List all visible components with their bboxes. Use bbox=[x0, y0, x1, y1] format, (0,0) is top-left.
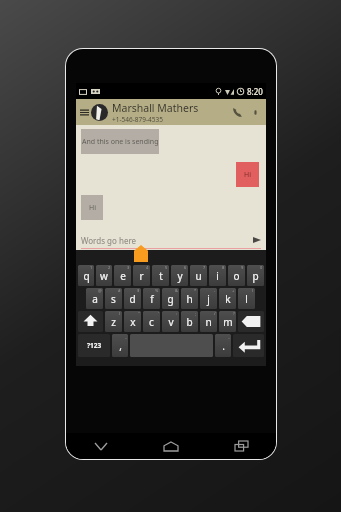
staticText: 0 bbox=[260, 265, 263, 270]
button[interactable]: 0 bbox=[247, 265, 264, 286]
button[interactable]: Key bbox=[238, 311, 264, 332]
button[interactable]: And this one is sending bbox=[81, 129, 159, 154]
staticText: 7 bbox=[203, 265, 206, 270]
staticText: b bbox=[186, 315, 193, 329]
button[interactable]: Home bbox=[136, 433, 206, 459]
staticText: e bbox=[120, 269, 126, 283]
button[interactable]: " bbox=[124, 311, 141, 332]
button[interactable]: ? bbox=[219, 311, 236, 332]
button[interactable]: 1 bbox=[78, 265, 94, 286]
staticText: 8 bbox=[222, 265, 225, 270]
button[interactable]: 2 bbox=[96, 265, 112, 286]
staticText: w bbox=[100, 269, 108, 283]
button[interactable]: More options bbox=[247, 104, 263, 120]
button[interactable]: 9 bbox=[228, 265, 245, 286]
staticText: 6 bbox=[184, 265, 187, 270]
button[interactable]: * bbox=[181, 288, 198, 309]
staticText: 4 bbox=[146, 265, 149, 270]
button[interactable]: Hi bbox=[81, 195, 103, 220]
button[interactable]: ) bbox=[105, 311, 122, 332]
staticText: 2 bbox=[108, 265, 111, 270]
staticText: % bbox=[155, 288, 159, 293]
button[interactable]: _ bbox=[112, 334, 128, 357]
staticText: : bbox=[176, 311, 178, 316]
button[interactable]: ( bbox=[238, 288, 255, 309]
staticText: t bbox=[159, 269, 163, 283]
staticText: d bbox=[129, 292, 136, 306]
button[interactable]: + bbox=[219, 288, 236, 309]
staticText: & bbox=[175, 288, 178, 293]
staticText: s bbox=[111, 292, 116, 306]
staticText: # bbox=[118, 288, 121, 293]
staticText: c bbox=[149, 315, 154, 329]
button[interactable]: _ bbox=[215, 334, 231, 357]
staticText: q bbox=[83, 269, 90, 283]
staticText: r bbox=[139, 269, 144, 283]
staticText: Words go here bbox=[81, 235, 253, 246]
button[interactable]: : bbox=[162, 311, 179, 332]
staticText: / bbox=[214, 311, 216, 316]
staticText: , bbox=[119, 339, 122, 353]
staticText: _ bbox=[125, 334, 127, 339]
button[interactable]: / bbox=[200, 311, 217, 332]
button[interactable]: - bbox=[200, 288, 217, 309]
staticText: p bbox=[252, 269, 259, 283]
button[interactable]: # bbox=[105, 288, 122, 309]
staticText: u bbox=[195, 269, 202, 283]
button[interactable]: & bbox=[162, 288, 179, 309]
staticText: x bbox=[130, 315, 136, 329]
button[interactable]: Call bbox=[227, 102, 247, 122]
staticText: 9 bbox=[241, 265, 244, 270]
staticText: ( bbox=[252, 288, 254, 293]
button[interactable]: 5 bbox=[152, 265, 169, 286]
staticText: k bbox=[225, 292, 231, 306]
staticText: + bbox=[232, 288, 235, 293]
button[interactable]: ?123 bbox=[78, 334, 110, 357]
button[interactable]: Open navigation drawer bbox=[79, 107, 90, 118]
staticText: 8:20 bbox=[247, 86, 263, 97]
staticText: - bbox=[214, 288, 216, 293]
staticText: 3 bbox=[127, 265, 130, 270]
button[interactable]: Words go here bbox=[81, 232, 261, 248]
staticText: " bbox=[138, 311, 140, 316]
staticText: f bbox=[150, 292, 154, 306]
staticText: 1 bbox=[90, 265, 93, 270]
button[interactable]: Recent apps bbox=[206, 433, 276, 459]
button[interactable]: 7 bbox=[190, 265, 207, 286]
button[interactable]: % bbox=[143, 288, 160, 309]
staticText: i bbox=[216, 269, 219, 283]
button[interactable]: 8 bbox=[209, 265, 226, 286]
staticText: _ bbox=[228, 334, 230, 339]
staticText: Hi bbox=[89, 203, 96, 213]
staticText: . bbox=[222, 339, 225, 353]
button[interactable]: ' bbox=[143, 311, 160, 332]
staticText: n bbox=[205, 315, 212, 329]
button[interactable]: @ bbox=[86, 288, 103, 309]
staticText: g bbox=[167, 292, 174, 306]
staticText: ? bbox=[233, 311, 235, 316]
staticText: m bbox=[223, 315, 233, 329]
button[interactable]: Hide keyboard bbox=[66, 433, 136, 459]
button[interactable]: $ bbox=[124, 288, 141, 309]
staticText: v bbox=[168, 315, 174, 329]
staticText: h bbox=[186, 292, 193, 306]
staticText: z bbox=[111, 315, 116, 329]
button[interactable]: Hi bbox=[236, 162, 259, 187]
button[interactable]: Key bbox=[78, 311, 103, 332]
button[interactable]: 3 bbox=[114, 265, 131, 286]
staticText: And this one is sending bbox=[82, 137, 159, 147]
staticText: * bbox=[194, 288, 197, 293]
staticText: Marshall Mathers bbox=[112, 101, 199, 115]
button[interactable]: ; bbox=[181, 311, 198, 332]
staticText: @ bbox=[98, 288, 102, 293]
button[interactable]: 6 bbox=[171, 265, 188, 286]
staticText: o bbox=[233, 269, 240, 283]
staticText: a bbox=[92, 292, 98, 306]
button[interactable]: Key bbox=[233, 334, 264, 357]
staticText: ; bbox=[195, 311, 197, 316]
button[interactable]: 4 bbox=[133, 265, 150, 286]
staticText: $ bbox=[137, 288, 140, 293]
staticText: ?123 bbox=[87, 341, 102, 350]
staticText: 5 bbox=[165, 265, 168, 270]
